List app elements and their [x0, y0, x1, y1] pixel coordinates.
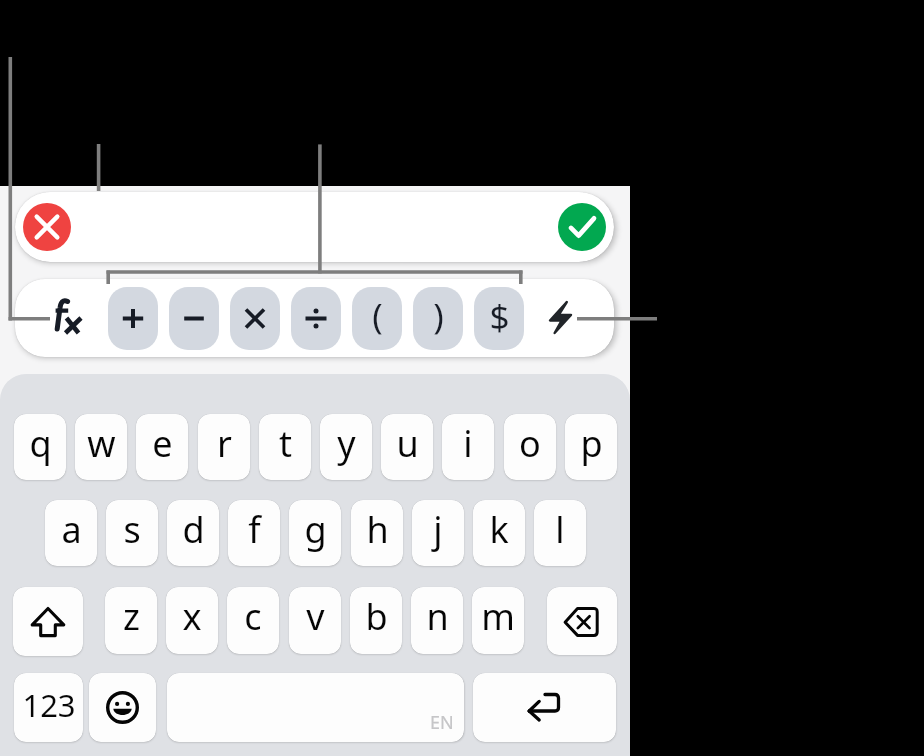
- staticText: ): [433, 292, 444, 340]
- button[interactable]: s: [106, 500, 158, 566]
- button[interactable]: i: [442, 414, 494, 480]
- staticText: m: [481, 592, 515, 641]
- staticText: y: [337, 419, 356, 468]
- staticText: b: [365, 592, 388, 641]
- staticText: w: [87, 419, 116, 468]
- button[interactable]: b: [350, 587, 402, 654]
- button[interactable]: Dollar: [474, 287, 524, 350]
- button[interactable]: Space: [167, 673, 464, 742]
- button[interactable]: Cancel formula: [23, 203, 71, 251]
- button[interactable]: z: [105, 587, 157, 654]
- staticText: $: [489, 293, 510, 341]
- button[interactable]: Multiply: [230, 287, 280, 350]
- button[interactable]: p: [565, 414, 617, 480]
- button[interactable]: Emoji: [89, 673, 156, 742]
- staticText: l: [555, 505, 565, 554]
- staticText: e: [152, 419, 173, 468]
- button[interactable]: Minus: [169, 287, 219, 350]
- button[interactable]: Plus: [108, 287, 158, 350]
- button[interactable]: f: [228, 500, 280, 566]
- button[interactable]: Shift: [13, 587, 83, 656]
- button[interactable]: e: [136, 414, 188, 480]
- staticText: z: [123, 592, 140, 641]
- button[interactable]: 123: [14, 673, 83, 742]
- button[interactable]: k: [473, 500, 525, 566]
- button[interactable]: o: [504, 414, 556, 480]
- staticText: a: [61, 505, 82, 554]
- staticText: o: [519, 419, 541, 468]
- button[interactable]: d: [167, 500, 219, 566]
- button[interactable]: Backspace: [547, 587, 617, 655]
- staticText: s: [123, 505, 141, 554]
- button[interactable]: y: [320, 414, 372, 480]
- staticText: k: [489, 505, 509, 554]
- staticText: 123: [22, 684, 76, 726]
- staticText: v: [306, 592, 325, 641]
- button[interactable]: x: [166, 587, 218, 654]
- button[interactable]: l: [534, 500, 586, 566]
- staticText: t: [279, 419, 292, 468]
- button[interactable]: c: [227, 587, 279, 654]
- button[interactable]: Return: [473, 673, 616, 742]
- staticText: j: [433, 505, 443, 554]
- button[interactable]: a: [45, 500, 97, 566]
- button[interactable]: Accept formula: [558, 203, 606, 251]
- button[interactable]: r: [198, 414, 250, 480]
- button[interactable]: Quick formula: [536, 288, 584, 346]
- button[interactable]: Functions: [46, 287, 102, 357]
- button[interactable]: Divide: [291, 287, 341, 350]
- staticText: p: [580, 419, 603, 468]
- button[interactable]: Open parenthesis: [352, 287, 402, 350]
- staticText: u: [396, 419, 419, 468]
- button[interactable]: q: [14, 414, 66, 480]
- button[interactable]: g: [289, 500, 341, 566]
- button[interactable]: j: [412, 500, 464, 566]
- staticText: c: [244, 592, 262, 641]
- staticText: n: [426, 592, 449, 641]
- staticText: f: [248, 505, 261, 554]
- button[interactable]: t: [259, 414, 311, 480]
- button[interactable]: w: [75, 414, 127, 480]
- staticText: q: [29, 419, 52, 468]
- staticText: x: [182, 592, 202, 641]
- button[interactable]: h: [351, 500, 403, 566]
- button[interactable]: v: [289, 587, 341, 654]
- staticText: g: [304, 505, 327, 554]
- button[interactable]: n: [411, 587, 463, 654]
- staticText: h: [366, 505, 389, 554]
- staticText: i: [463, 419, 473, 468]
- button[interactable]: m: [472, 587, 524, 654]
- staticText: EN: [430, 710, 454, 735]
- staticText: d: [182, 505, 205, 554]
- staticText: r: [217, 419, 232, 468]
- staticText: (: [372, 292, 383, 340]
- button[interactable]: u: [381, 414, 433, 480]
- button[interactable]: Close parenthesis: [413, 287, 463, 350]
